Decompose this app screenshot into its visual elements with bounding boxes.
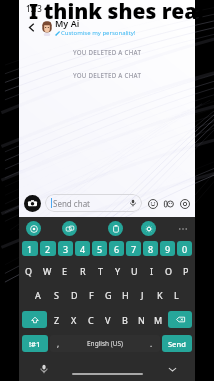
staticText: I <box>150 265 154 277</box>
staticText: T <box>98 265 104 277</box>
button[interactable]: H <box>117 287 134 302</box>
button[interactable]: 3 <box>58 241 73 256</box>
button[interactable]: Camera <box>24 195 41 212</box>
button[interactable]: 8 <box>143 241 158 256</box>
button[interactable]: J <box>134 287 151 302</box>
staticText: E <box>62 265 68 277</box>
button[interactable]: 4 <box>75 241 90 256</box>
button[interactable]: Back <box>23 19 39 35</box>
button[interactable]: P <box>177 263 194 278</box>
staticText: F <box>89 289 94 301</box>
staticText: O <box>165 265 173 277</box>
button[interactable]: R <box>74 263 92 278</box>
button[interactable]: T <box>92 263 109 278</box>
staticText: L <box>174 289 179 301</box>
button[interactable]: GIF <box>62 221 77 236</box>
staticText: I think shes real <box>29 0 205 26</box>
button[interactable]: G <box>100 287 117 302</box>
button[interactable]: 6 <box>109 241 124 256</box>
staticText: English (US) <box>87 339 124 348</box>
button[interactable]: 5 <box>92 241 107 256</box>
button[interactable]: Emoji <box>146 197 159 210</box>
staticText: Z <box>54 314 60 326</box>
staticText: Customise my personality! <box>61 29 136 37</box>
button[interactable]: Z <box>48 311 65 328</box>
staticText: W <box>43 265 52 277</box>
staticText: R <box>80 265 86 277</box>
button[interactable]: !#1 <box>22 335 48 352</box>
staticText: 2 <box>45 243 51 255</box>
button[interactable]: N <box>133 311 150 328</box>
button[interactable]: Voice input <box>37 362 51 376</box>
button[interactable]: X <box>65 311 82 328</box>
button[interactable]: E <box>56 263 74 278</box>
staticText: J <box>141 289 144 301</box>
staticText: H <box>122 289 129 301</box>
staticText: K <box>157 289 163 301</box>
staticText: D <box>71 289 78 301</box>
staticText: S <box>54 289 59 301</box>
button[interactable]: 9 <box>160 241 175 256</box>
button[interactable]: M <box>150 311 167 328</box>
staticText: 1 <box>27 243 33 255</box>
staticText: 4 <box>80 243 86 255</box>
staticText: 8 <box>148 243 154 255</box>
button[interactable]: More options <box>176 222 190 236</box>
staticText: , <box>57 338 60 349</box>
button[interactable]: K <box>151 287 168 302</box>
button[interactable]: Stickers <box>162 197 175 210</box>
button[interactable]: Assistant <box>26 221 41 236</box>
button[interactable]: F <box>83 287 100 302</box>
button[interactable]: Voice note <box>127 197 139 209</box>
button[interactable]: A <box>29 287 47 302</box>
staticText: My Ai <box>55 17 80 29</box>
button[interactable]: Send <box>162 335 192 352</box>
button[interactable]: Settings <box>141 221 156 236</box>
staticText: . <box>150 338 153 349</box>
staticText: Y <box>115 265 121 277</box>
staticText: 5 <box>97 243 103 255</box>
staticText: YOU DELETED A CHAT <box>73 48 142 56</box>
button[interactable]: I <box>143 263 160 278</box>
button[interactable]: S <box>47 287 65 302</box>
button[interactable]: 7 <box>126 241 141 256</box>
staticText: 1:13 <box>26 3 42 14</box>
button[interactable]: 1 <box>22 241 38 256</box>
staticText: M <box>154 314 163 326</box>
button[interactable]: U <box>126 263 143 278</box>
staticText: B <box>122 314 128 326</box>
staticText: 9 <box>165 243 171 255</box>
button[interactable]: Clipboard <box>108 221 123 236</box>
staticText: N <box>138 314 145 326</box>
button[interactable]: Location <box>178 197 191 210</box>
button[interactable]: Backspace <box>168 311 192 328</box>
staticText: U <box>131 265 138 277</box>
button[interactable]: English (US) <box>50 335 160 352</box>
staticText: Q <box>25 265 33 277</box>
button[interactable]: Q <box>20 263 38 278</box>
button[interactable]: O <box>160 263 177 278</box>
button[interactable]: L <box>168 287 185 302</box>
staticText: A <box>35 289 41 301</box>
button[interactable]: Send chat <box>45 194 142 212</box>
button[interactable]: Hide keyboard <box>165 362 179 376</box>
button[interactable]: Y <box>109 263 126 278</box>
staticText: X <box>71 314 77 326</box>
staticText: YOU DELETED A CHAT <box>73 71 142 79</box>
staticText: !#1 <box>29 339 41 349</box>
staticText: 7 <box>131 243 137 255</box>
button[interactable]: 0 <box>177 241 192 256</box>
button[interactable]: 2 <box>40 241 56 256</box>
button[interactable]: W <box>38 263 56 278</box>
staticText: G <box>105 289 112 301</box>
staticText: V <box>105 314 111 326</box>
staticText: Send chat <box>53 198 91 209</box>
staticText: C <box>88 314 94 326</box>
staticText: P <box>183 265 189 277</box>
button[interactable]: Shift <box>22 311 47 328</box>
button[interactable]: V <box>99 311 116 328</box>
button[interactable]: D <box>65 287 83 302</box>
button[interactable]: B <box>116 311 133 328</box>
button[interactable]: C <box>82 311 99 328</box>
staticText: 6 <box>114 243 120 255</box>
